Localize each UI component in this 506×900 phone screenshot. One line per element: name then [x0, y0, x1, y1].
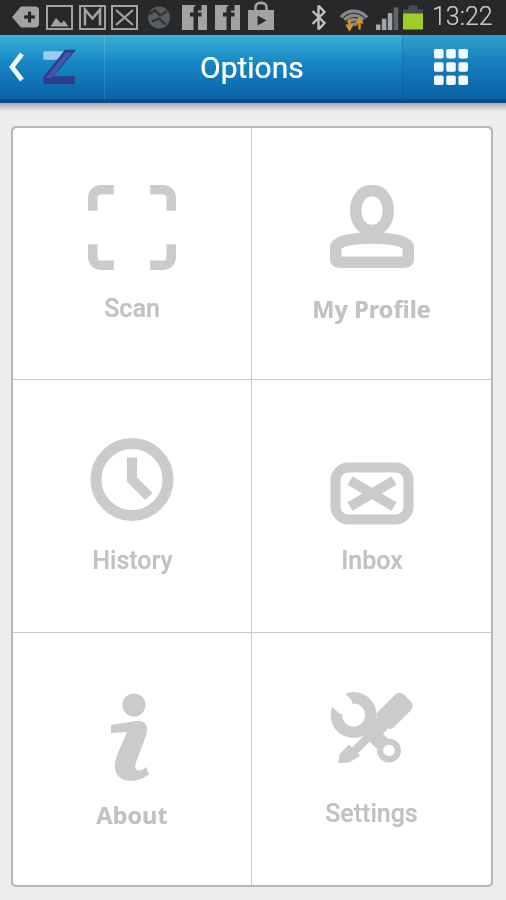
staticText: Settings: [325, 799, 418, 828]
staticText: Inbox: [341, 546, 403, 575]
button[interactable]: Back: [0, 35, 33, 99]
button[interactable]: Inbox: [252, 380, 491, 632]
button[interactable]: Settings: [252, 633, 491, 885]
button[interactable]: Home: [33, 35, 85, 99]
staticText: History: [92, 546, 173, 575]
button[interactable]: Apps grid: [402, 35, 506, 99]
staticText: 13:22: [432, 2, 493, 31]
staticText: Options: [200, 50, 304, 85]
button[interactable]: Scan: [13, 128, 251, 379]
button[interactable]: About: [13, 633, 251, 885]
staticText: About: [96, 799, 168, 831]
button[interactable]: History: [13, 380, 251, 632]
staticText: Scan: [104, 294, 160, 323]
button[interactable]: My Profile: [252, 128, 491, 379]
staticText: My Profile: [312, 293, 431, 325]
